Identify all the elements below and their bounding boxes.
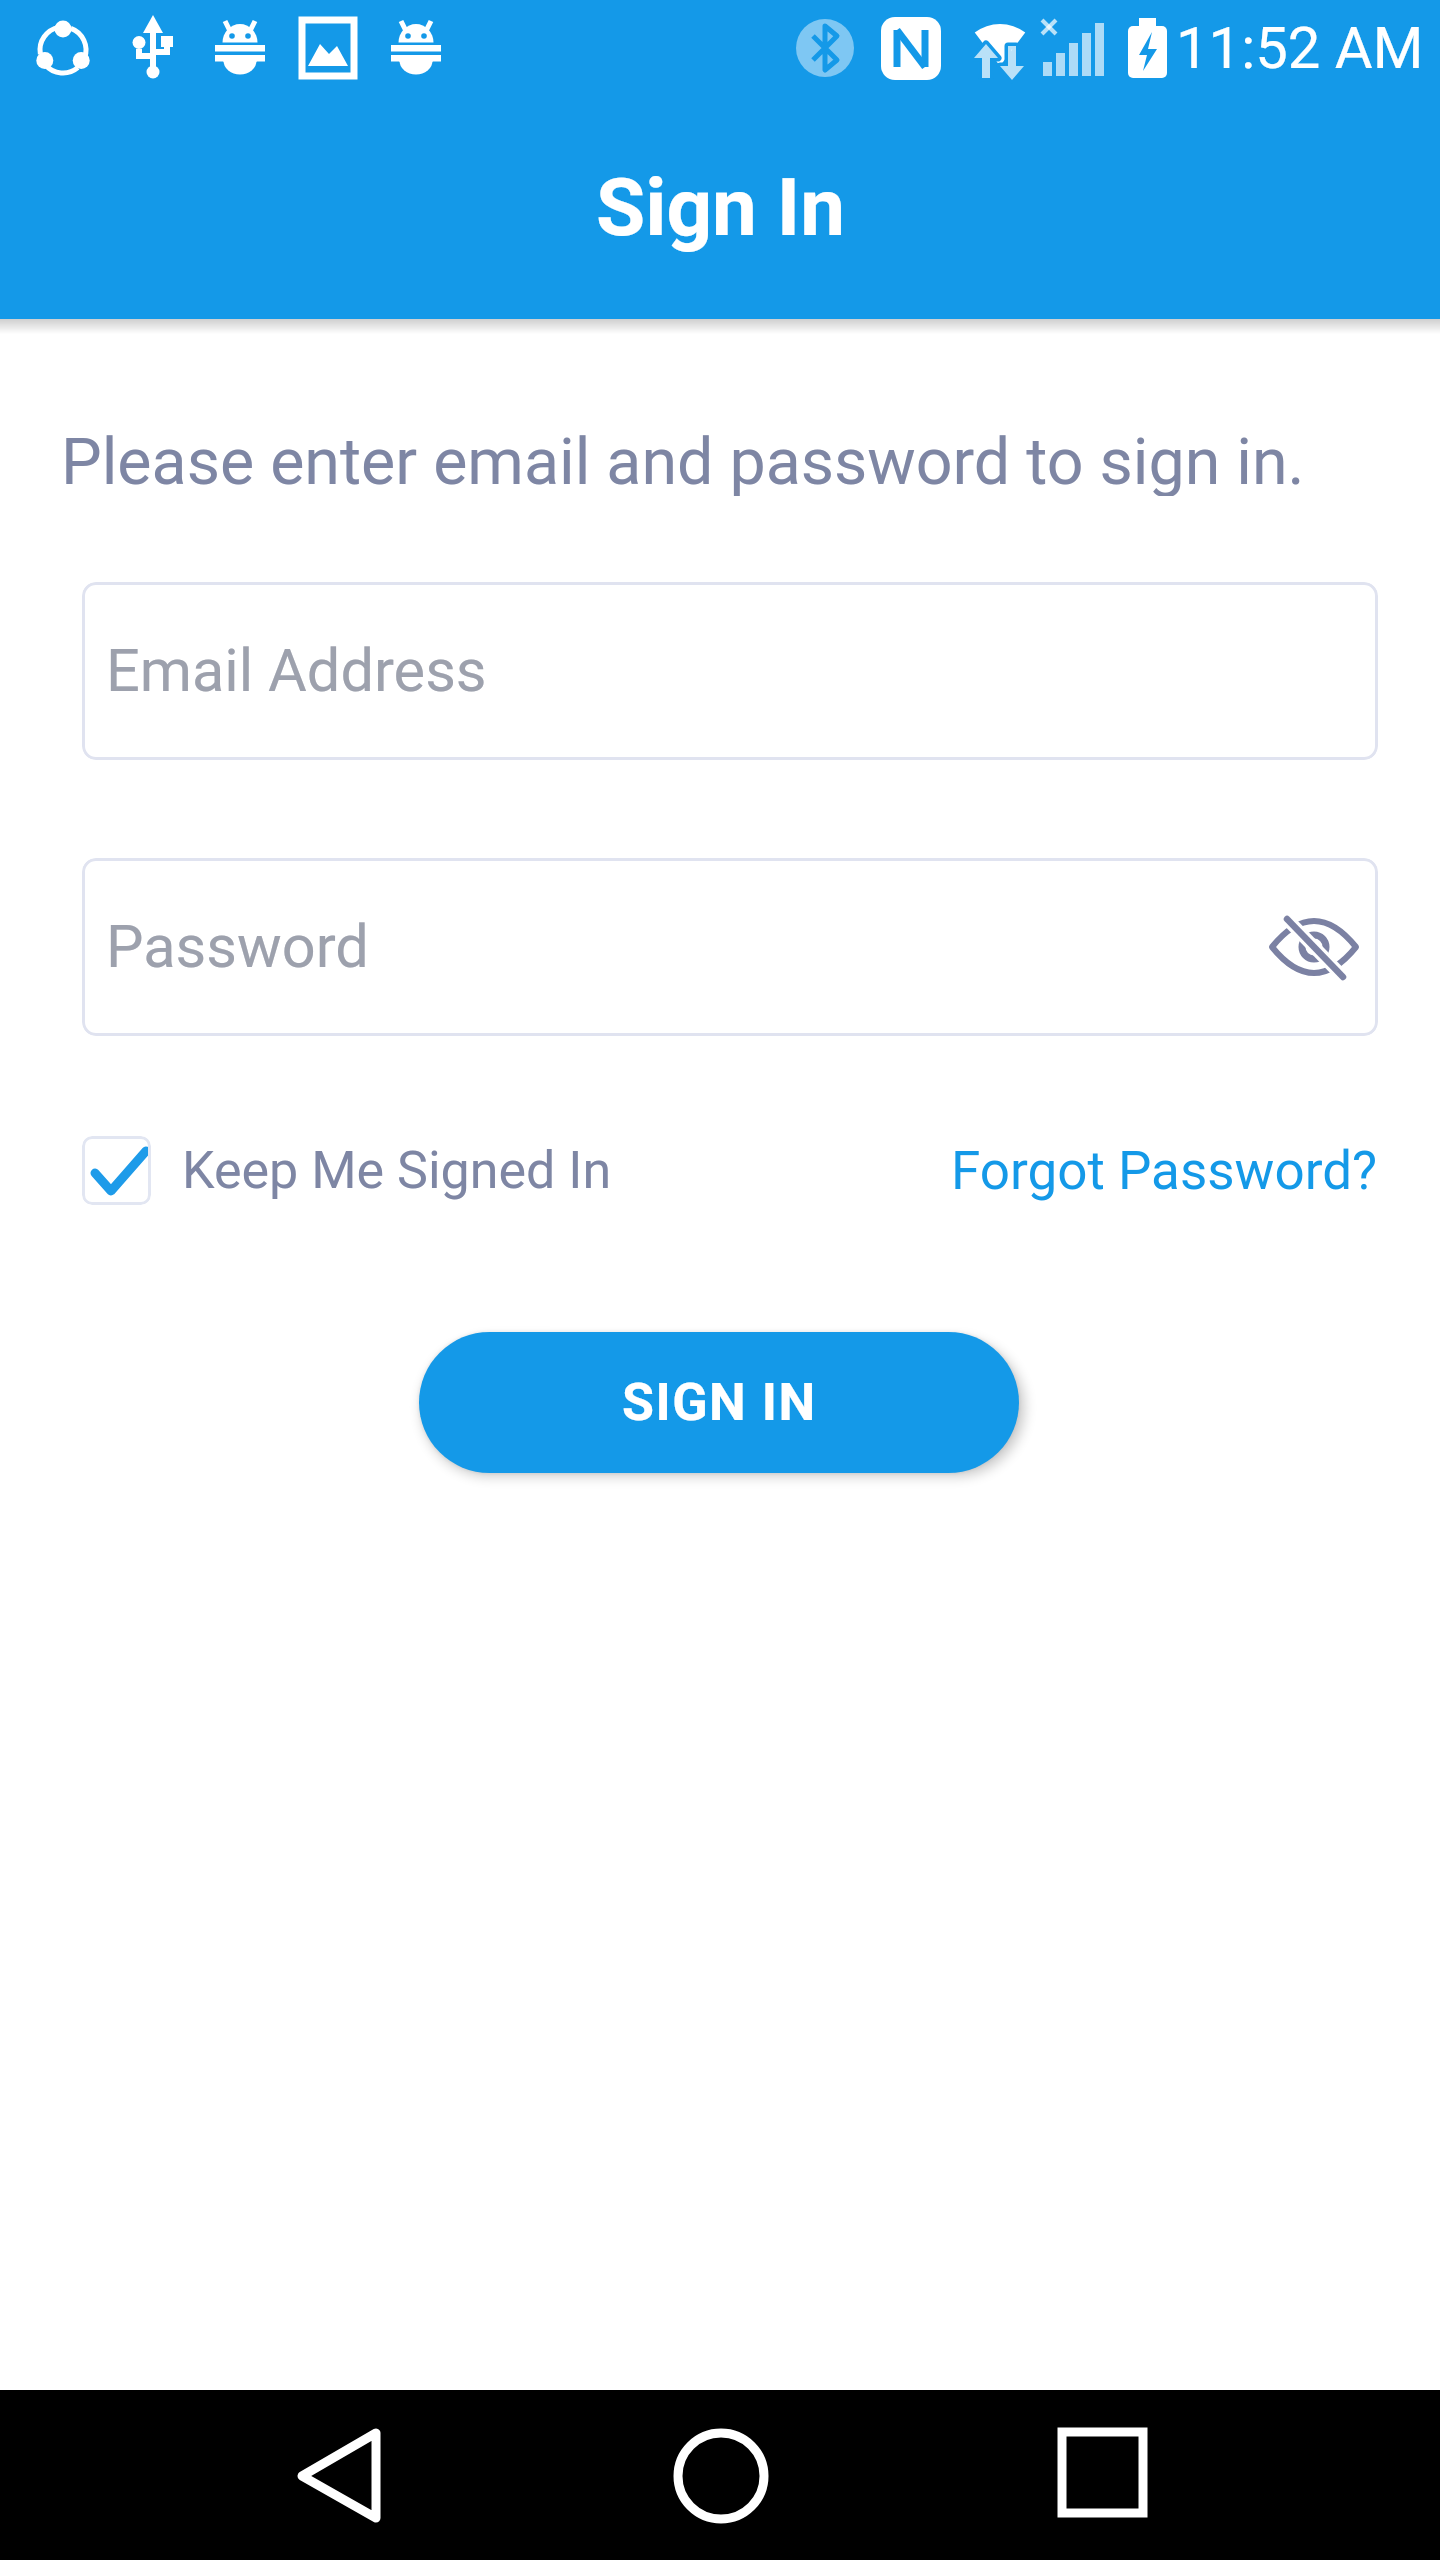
staticText: 11:52 AM (1176, 14, 1424, 82)
button[interactable]: Keep Me Signed In (82, 1136, 612, 1205)
button[interactable]: Password (82, 858, 1378, 1036)
button[interactable] (965, 2390, 1235, 2560)
staticText: Email Address (106, 636, 487, 706)
button[interactable]: SIGN IN (419, 1332, 1019, 1473)
button[interactable]: Email Address (82, 582, 1378, 760)
staticText: Keep Me Signed In (182, 1140, 612, 1201)
button[interactable] (1270, 915, 1358, 979)
staticText: Password (106, 912, 369, 982)
button[interactable]: Forgot Password? (951, 1140, 1378, 1202)
button[interactable] (240, 2390, 510, 2560)
staticText: SIGN IN (622, 1372, 817, 1433)
staticText: Please enter email and password to sign … (61, 424, 1305, 496)
staticText: Sign In (596, 161, 845, 255)
button[interactable] (585, 2390, 855, 2560)
